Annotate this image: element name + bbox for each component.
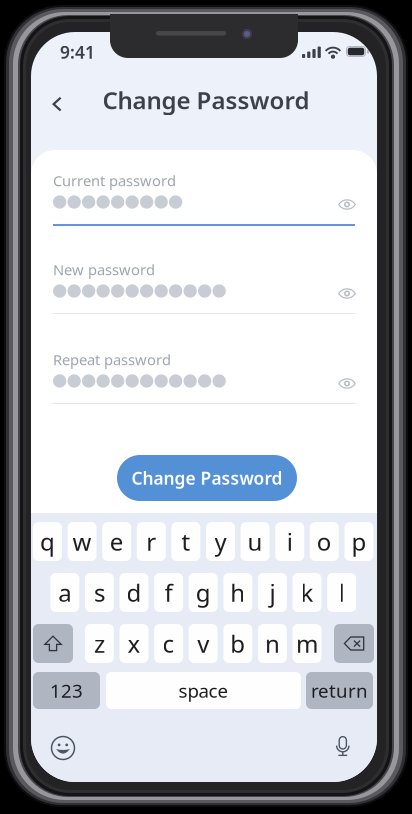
staticText: z <box>94 628 105 659</box>
button[interactable]: Emoji <box>52 737 74 759</box>
button[interactable]: n <box>258 624 287 663</box>
button[interactable]: m <box>292 624 321 663</box>
button[interactable]: v <box>189 624 218 663</box>
staticText: n <box>265 628 280 659</box>
staticText: e <box>110 526 124 557</box>
button[interactable]: r <box>137 522 166 561</box>
staticText: Change Password <box>102 84 309 116</box>
button[interactable]: space <box>106 672 301 709</box>
button[interactable]: b <box>223 624 252 663</box>
button[interactable]: y <box>206 522 235 561</box>
staticText: o <box>317 526 332 557</box>
button[interactable]: e <box>102 522 131 561</box>
button[interactable]: Shift <box>33 624 73 663</box>
staticText: i <box>287 526 293 557</box>
button[interactable]: o <box>310 522 339 561</box>
button[interactable]: Change Password <box>117 455 297 501</box>
button[interactable]: t <box>171 522 200 561</box>
button[interactable]: 123 <box>33 672 100 709</box>
staticText: w <box>73 526 92 557</box>
staticText: c <box>163 628 175 659</box>
staticText: r <box>146 526 156 557</box>
button[interactable]: x <box>119 624 148 663</box>
staticText: Current password <box>53 171 176 190</box>
button[interactable]: Show password <box>338 198 356 211</box>
staticText: 123 <box>50 678 83 703</box>
button[interactable]: h <box>223 573 252 612</box>
button[interactable]: Show password <box>338 377 356 390</box>
button[interactable]: c <box>154 624 183 663</box>
staticText: a <box>58 577 71 608</box>
staticText: s <box>94 577 105 608</box>
button[interactable]: a <box>50 573 79 612</box>
staticText: u <box>248 526 263 557</box>
staticText: space <box>178 678 228 703</box>
button[interactable]: d <box>119 573 148 612</box>
button[interactable]: s <box>85 573 114 612</box>
staticText: m <box>296 628 318 659</box>
button[interactable]: g <box>189 573 218 612</box>
button[interactable]: q <box>33 522 62 561</box>
button[interactable]: Delete <box>334 624 374 663</box>
button[interactable]: z <box>85 624 114 663</box>
staticText: Change Password <box>131 466 282 489</box>
button[interactable]: j <box>258 573 287 612</box>
staticText: Repeat password <box>53 350 171 369</box>
button[interactable]: f <box>154 573 183 612</box>
button[interactable]: l <box>327 573 356 612</box>
staticText: q <box>40 526 55 557</box>
staticText: g <box>196 577 211 608</box>
button[interactable]: k <box>292 573 321 612</box>
button[interactable]: i <box>275 522 304 561</box>
staticText: l <box>339 577 345 608</box>
staticText: j <box>269 577 275 608</box>
staticText: h <box>230 577 245 608</box>
staticText: k <box>300 577 313 608</box>
staticText: return <box>311 678 368 703</box>
button[interactable]: p <box>344 522 373 561</box>
button[interactable]: return <box>306 672 373 709</box>
staticText: p <box>351 526 366 557</box>
staticText: f <box>165 577 173 608</box>
button[interactable]: Back <box>42 89 72 119</box>
staticText: v <box>197 628 209 659</box>
staticText: y <box>214 526 226 557</box>
button[interactable]: Show password <box>338 287 356 300</box>
button[interactable]: Dictate <box>335 736 351 756</box>
staticText: x <box>127 628 140 659</box>
staticText: t <box>181 526 190 557</box>
staticText: New password <box>53 260 155 279</box>
button[interactable]: u <box>241 522 270 561</box>
staticText: d <box>126 577 141 608</box>
button[interactable]: w <box>68 522 97 561</box>
staticText: 9:41 <box>60 40 95 63</box>
staticText: b <box>230 628 245 659</box>
